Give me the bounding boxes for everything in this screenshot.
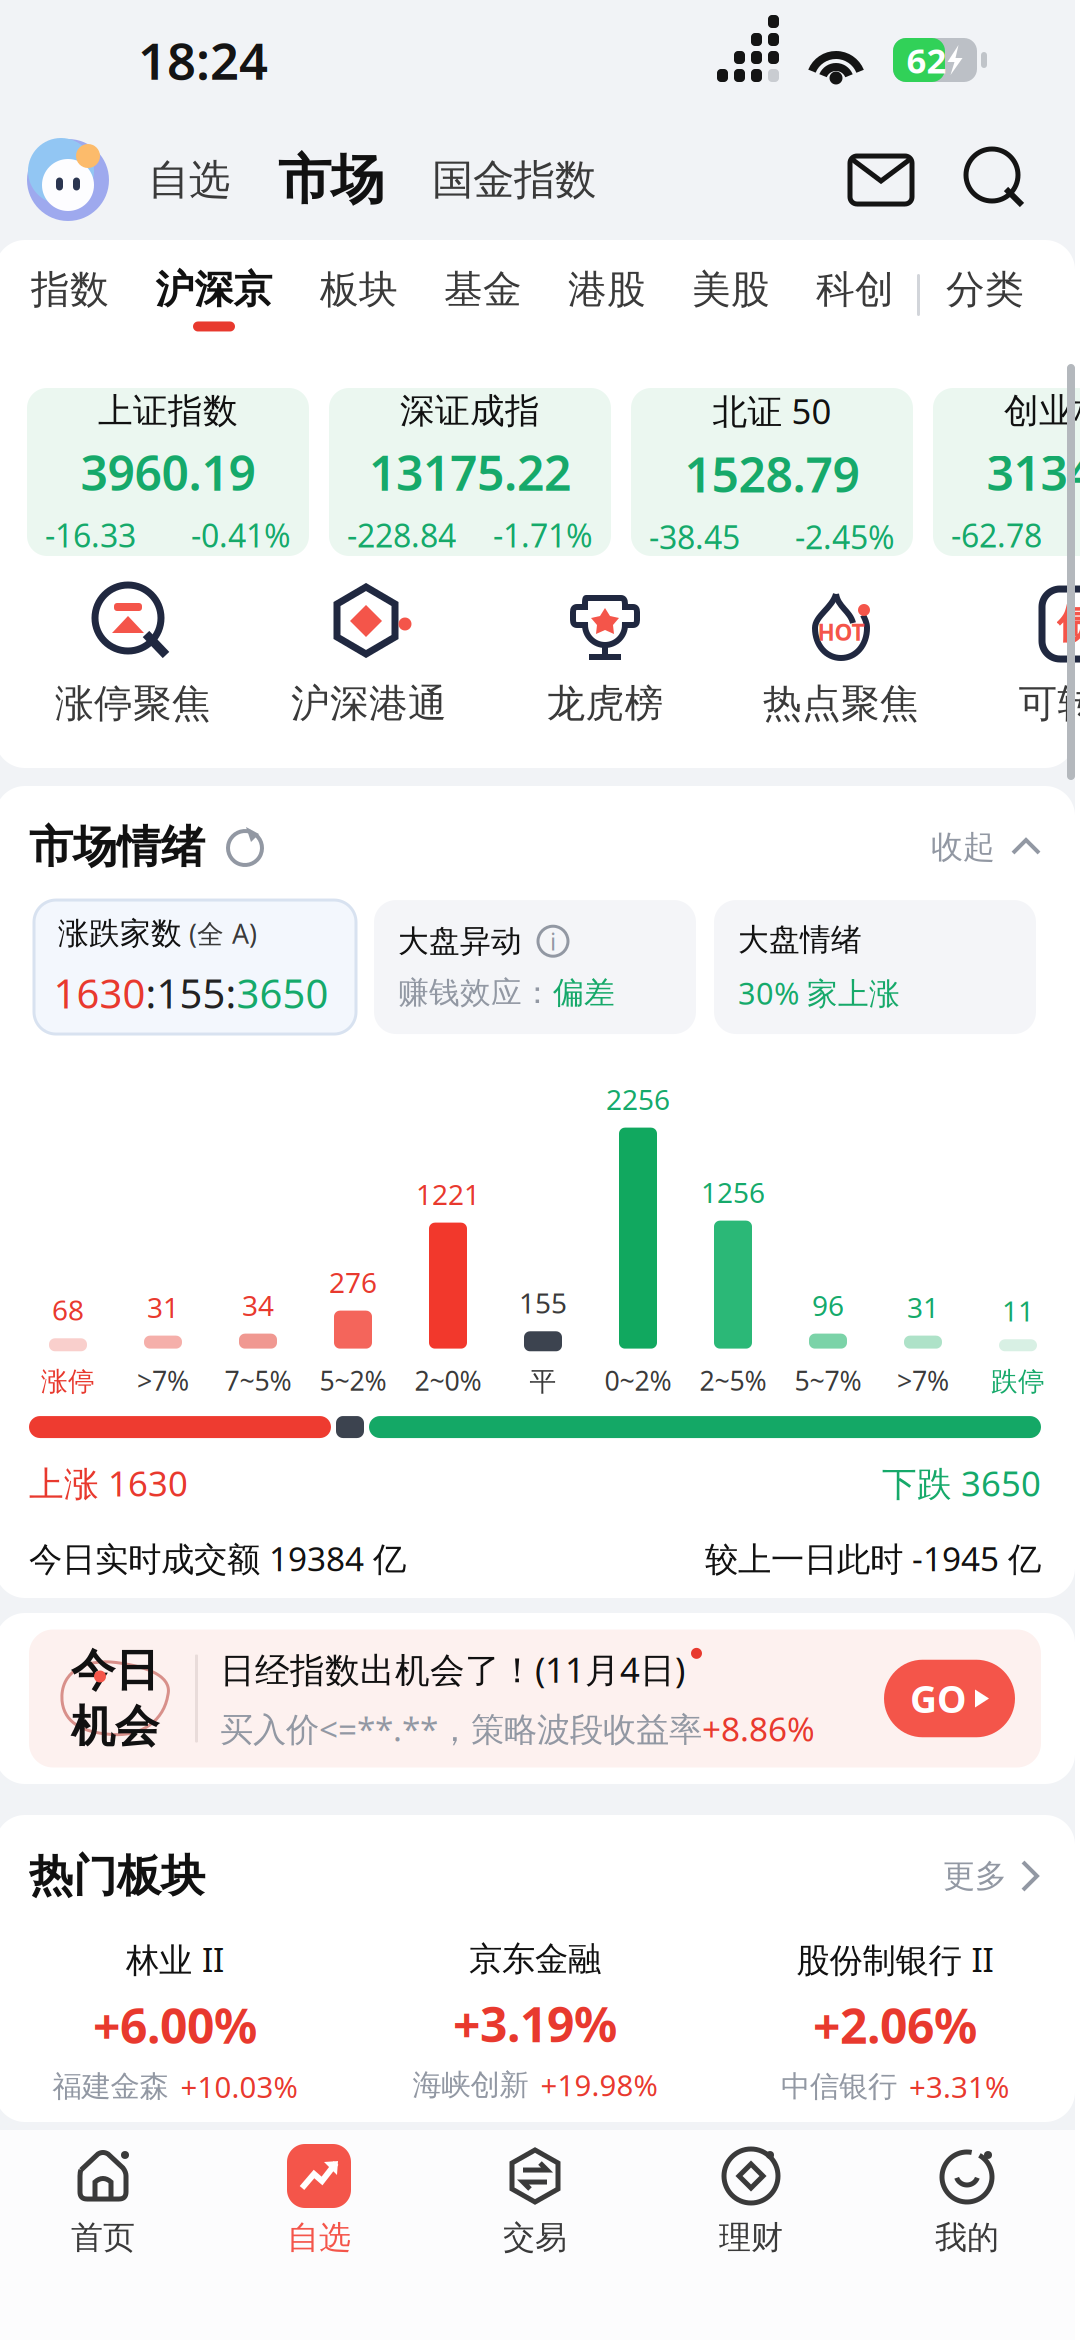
staticText: +3.31% bbox=[909, 2067, 1009, 2106]
staticText: 68 bbox=[52, 1291, 84, 1328]
staticText: 市场 bbox=[278, 147, 384, 213]
staticText: >7% bbox=[897, 1363, 949, 1398]
button[interactable]: 板块 bbox=[297, 240, 421, 350]
button[interactable]: 理财 bbox=[643, 2144, 859, 2257]
staticText: -2.45% bbox=[795, 516, 895, 558]
staticText: +6.00% bbox=[93, 1993, 257, 2057]
button[interactable]: 港股 bbox=[545, 240, 669, 350]
button[interactable]: 股份制银行 II bbox=[715, 1937, 1075, 2106]
staticText: 62 bbox=[906, 37, 946, 83]
button[interactable]: 今日 bbox=[29, 1629, 1041, 1767]
staticText: 赚钱效应： bbox=[398, 974, 553, 1012]
staticText: i bbox=[550, 925, 556, 957]
staticText: 上涨 1630 bbox=[29, 1460, 188, 1506]
staticText: 机会 bbox=[71, 1699, 159, 1753]
staticText: 1256 bbox=[701, 1173, 765, 1211]
button[interactable]: Messages bbox=[833, 132, 929, 228]
button[interactable]: 北证 50 bbox=[631, 388, 913, 556]
staticText: -16.33 bbox=[45, 514, 136, 556]
staticText: 收起 bbox=[931, 827, 995, 867]
staticText: 沪深京 bbox=[155, 266, 272, 313]
button[interactable]: 美股 bbox=[669, 240, 793, 350]
staticText: 3650 bbox=[236, 966, 328, 1019]
button[interactable]: 科创 bbox=[793, 240, 917, 350]
staticText: 美股 bbox=[692, 266, 770, 313]
staticText: 沪深港通 bbox=[291, 680, 447, 727]
button[interactable]: Search bbox=[949, 132, 1045, 228]
staticText: 大盘情绪 bbox=[738, 921, 862, 958]
button[interactable]: 我的 bbox=[859, 2144, 1075, 2257]
staticText: 我的 bbox=[935, 2218, 999, 2257]
staticText: 2~5% bbox=[699, 1363, 766, 1398]
staticText: 自选 bbox=[148, 155, 230, 205]
staticText: 31 bbox=[147, 1288, 179, 1326]
button[interactable]: 涨跌家数 bbox=[34, 900, 356, 1034]
button[interactable]: 基金 bbox=[421, 240, 545, 350]
button[interactable]: 债 bbox=[959, 582, 1080, 727]
button[interactable]: 首页 bbox=[0, 2144, 211, 2257]
staticText: -62.78 bbox=[951, 514, 1042, 556]
staticText: 平 bbox=[529, 1365, 556, 1398]
staticText: 5~7% bbox=[794, 1363, 861, 1398]
button[interactable]: 交易 bbox=[427, 2144, 643, 2257]
button[interactable]: 自选 bbox=[211, 2144, 427, 2257]
staticText: 海峡创新 bbox=[412, 2067, 528, 2103]
staticText: 可转债 bbox=[1018, 680, 1080, 727]
button[interactable]: 市场 bbox=[275, 120, 387, 240]
button[interactable]: HOT bbox=[723, 582, 959, 727]
staticText: 科创 bbox=[816, 266, 894, 313]
staticText: -38.45 bbox=[649, 516, 740, 558]
staticText: -228.84 bbox=[347, 514, 456, 556]
staticText: 今日实时成交额 19384 亿 bbox=[29, 1536, 406, 1580]
staticText: 1630 bbox=[53, 966, 145, 1019]
button[interactable]: 深证成指 bbox=[329, 388, 611, 556]
staticText: :155: bbox=[145, 966, 236, 1019]
staticText: 首页 bbox=[71, 2218, 135, 2257]
staticText: 较上一日此时 -1945 亿 bbox=[705, 1536, 1041, 1580]
button[interactable]: 国金指数 bbox=[429, 120, 599, 240]
button[interactable]: 京东金融 bbox=[355, 1939, 715, 2104]
button[interactable]: 指数 bbox=[9, 240, 131, 350]
button[interactable]: 分类 bbox=[920, 240, 1050, 350]
staticText: 13175.22 bbox=[369, 440, 571, 504]
staticText: 林业 II bbox=[126, 1937, 224, 1981]
staticText: 11 bbox=[1002, 1292, 1034, 1329]
button[interactable]: 沪深京 bbox=[131, 240, 297, 350]
staticText: 龙虎榜 bbox=[546, 680, 663, 727]
staticText: -0.41% bbox=[191, 514, 291, 556]
staticText: +2.06% bbox=[813, 1993, 977, 2057]
button[interactable]: 上证指数 bbox=[27, 388, 309, 556]
staticText: 3960.19 bbox=[80, 440, 255, 504]
staticText: +8.86% bbox=[702, 1706, 815, 1751]
staticText: 下跌 3650 bbox=[882, 1460, 1041, 1506]
staticText: HOT bbox=[817, 617, 864, 647]
button[interactable]: 沪深港通 bbox=[251, 582, 487, 727]
staticText: 中信银行 bbox=[781, 2068, 897, 2104]
button[interactable]: 龙虎榜 bbox=[487, 582, 723, 727]
button[interactable]: 涨停聚焦 bbox=[15, 582, 251, 727]
button[interactable]: 自选 bbox=[147, 120, 231, 240]
staticText: 基金 bbox=[444, 266, 522, 313]
button[interactable]: 大盘情绪 bbox=[714, 900, 1036, 1034]
staticText: >7% bbox=[137, 1363, 189, 1398]
staticText: 1528.79 bbox=[684, 442, 859, 506]
staticText: 96 bbox=[812, 1286, 844, 1324]
staticText: 热点聚焦 bbox=[763, 680, 919, 727]
button[interactable]: 创业板指 bbox=[933, 388, 1080, 556]
staticText: (全 A) bbox=[182, 916, 257, 951]
staticText: 国金指数 bbox=[432, 155, 596, 205]
staticText: 7~5% bbox=[224, 1363, 291, 1398]
staticText: 交易 bbox=[503, 2218, 567, 2257]
staticText: 深证成指 bbox=[400, 390, 540, 432]
staticText: 债 bbox=[1057, 599, 1080, 648]
button[interactable]: 更多 bbox=[943, 1856, 1041, 1896]
staticText: 0~2% bbox=[604, 1363, 671, 1398]
staticText: 市场情绪 bbox=[29, 820, 205, 874]
button[interactable]: 林业 II bbox=[0, 1937, 355, 2106]
staticText: 18:24 bbox=[138, 26, 268, 94]
staticText: 涨停 bbox=[41, 1365, 95, 1398]
staticText: 板块 bbox=[320, 266, 398, 313]
button[interactable]: 收起 bbox=[931, 827, 1041, 867]
staticText: 30% 家上涨 bbox=[738, 972, 900, 1013]
button[interactable]: 大盘异动 bbox=[374, 900, 696, 1034]
